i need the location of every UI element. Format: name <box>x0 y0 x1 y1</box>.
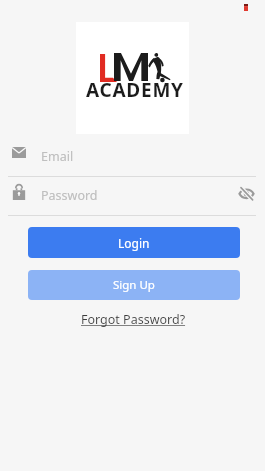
button[interactable]: Login <box>28 227 240 258</box>
staticText: Password <box>41 187 98 204</box>
staticText: ACADEMY <box>86 77 184 103</box>
button[interactable]: Sign Up <box>28 270 240 300</box>
staticText: Sign Up <box>113 277 155 293</box>
button[interactable]: Toggle password visibility <box>234 182 256 204</box>
staticText: Forgot Password? <box>81 311 186 328</box>
staticText: Email <box>41 148 74 165</box>
staticText: Login <box>118 235 150 251</box>
button[interactable]: Forgot Password? <box>78 307 189 331</box>
